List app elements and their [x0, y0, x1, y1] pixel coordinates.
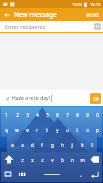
staticText: c	[41, 157, 44, 163]
button[interactable]: p	[92, 122, 102, 137]
button[interactable]: 4	[32, 107, 42, 122]
staticText: p	[96, 127, 99, 133]
staticText: 6	[56, 112, 59, 118]
staticText: e	[26, 127, 29, 133]
staticText: s	[21, 142, 24, 148]
button[interactable]: Symbols	[15, 167, 29, 182]
staticText: w	[15, 127, 19, 133]
button[interactable]: f	[37, 137, 47, 152]
staticText: r	[36, 127, 38, 133]
staticText: n	[71, 157, 74, 163]
staticText: d	[31, 142, 34, 148]
button[interactable]: Enter	[88, 167, 102, 182]
button[interactable]: k	[77, 137, 87, 152]
staticText: v	[51, 157, 54, 163]
staticText: x	[31, 157, 34, 163]
button[interactable]: Emoji	[1, 167, 15, 182]
button[interactable]: b	[57, 152, 67, 167]
button[interactable]: Back	[0, 8, 14, 21]
button[interactable]: l	[87, 137, 97, 152]
button[interactable]: Add recipient from contacts	[92, 21, 103, 32]
button[interactable]: x	[27, 152, 37, 167]
staticText: z	[21, 157, 24, 163]
staticText: a	[11, 142, 14, 148]
staticText: t	[46, 127, 48, 133]
button[interactable]: i	[72, 122, 82, 137]
button[interactable]: q	[1, 122, 12, 137]
button[interactable]: MORE	[83, 8, 103, 21]
button[interactable]: 9	[82, 107, 92, 122]
button[interactable]: z	[17, 152, 27, 167]
staticText: 2	[16, 112, 19, 118]
button[interactable]: Shift	[1, 152, 17, 167]
button[interactable]: t	[42, 122, 52, 137]
button[interactable]: u	[62, 122, 72, 137]
staticText: q	[5, 127, 8, 133]
button[interactable]: o	[82, 122, 92, 137]
button[interactable]: y	[52, 122, 62, 137]
staticText: 4	[36, 112, 39, 118]
button[interactable]	[29, 167, 74, 182]
button[interactable]: m	[77, 152, 87, 167]
staticText: f	[41, 142, 43, 148]
button[interactable]: 5	[42, 107, 52, 122]
button[interactable]: r	[32, 122, 42, 137]
staticText: u	[66, 127, 69, 133]
button[interactable]: 6	[52, 107, 62, 122]
button[interactable]: 3	[22, 107, 32, 122]
button[interactable]: j	[67, 137, 77, 152]
button[interactable]: 0	[92, 107, 102, 122]
button[interactable]: s	[17, 137, 27, 152]
staticText: MORE	[86, 12, 100, 18]
staticText: g	[51, 142, 54, 148]
staticText: 0	[96, 112, 99, 118]
button[interactable]: v	[47, 152, 57, 167]
button[interactable]: 1	[1, 107, 12, 122]
button[interactable]: 8	[72, 107, 82, 122]
button[interactable]: Backspace	[87, 152, 102, 167]
button[interactable]: w	[12, 122, 22, 137]
staticText: m	[80, 157, 85, 163]
button[interactable]: Have a nice day!	[12, 95, 88, 102]
staticText: 3	[26, 112, 29, 118]
staticText: 8	[76, 112, 79, 118]
button[interactable]: a	[7, 137, 17, 152]
button[interactable]: Attach	[2, 93, 12, 103]
staticText: 7	[66, 112, 69, 118]
staticText: h	[61, 142, 64, 148]
button[interactable]: e	[22, 122, 32, 137]
button[interactable]: Enter recipients	[0, 21, 103, 32]
staticText: 1	[5, 112, 8, 118]
staticText: Have a nice day!	[12, 95, 50, 102]
button[interactable]: n	[67, 152, 77, 167]
staticText: 100%	[72, 2, 83, 7]
staticText: b	[61, 157, 64, 163]
button[interactable]: Send	[90, 93, 101, 104]
staticText: l	[91, 142, 93, 148]
staticText: New message	[14, 10, 83, 19]
staticText: 5	[46, 112, 49, 118]
button[interactable]: g	[47, 137, 57, 152]
staticText: 9	[86, 112, 89, 118]
button[interactable]: d	[27, 137, 37, 152]
button[interactable]: h	[57, 137, 67, 152]
button[interactable]: 7	[62, 107, 72, 122]
staticText: 15:19	[90, 2, 101, 7]
staticText: j	[71, 142, 73, 148]
staticText: Enter recipients	[5, 23, 92, 30]
staticText: o	[86, 127, 89, 133]
button[interactable]: c	[37, 152, 47, 167]
staticText: i	[76, 127, 78, 133]
staticText: k	[81, 142, 84, 148]
button[interactable]: 2	[12, 107, 22, 122]
staticText: y	[56, 127, 59, 133]
button[interactable]: Period	[74, 167, 88, 182]
